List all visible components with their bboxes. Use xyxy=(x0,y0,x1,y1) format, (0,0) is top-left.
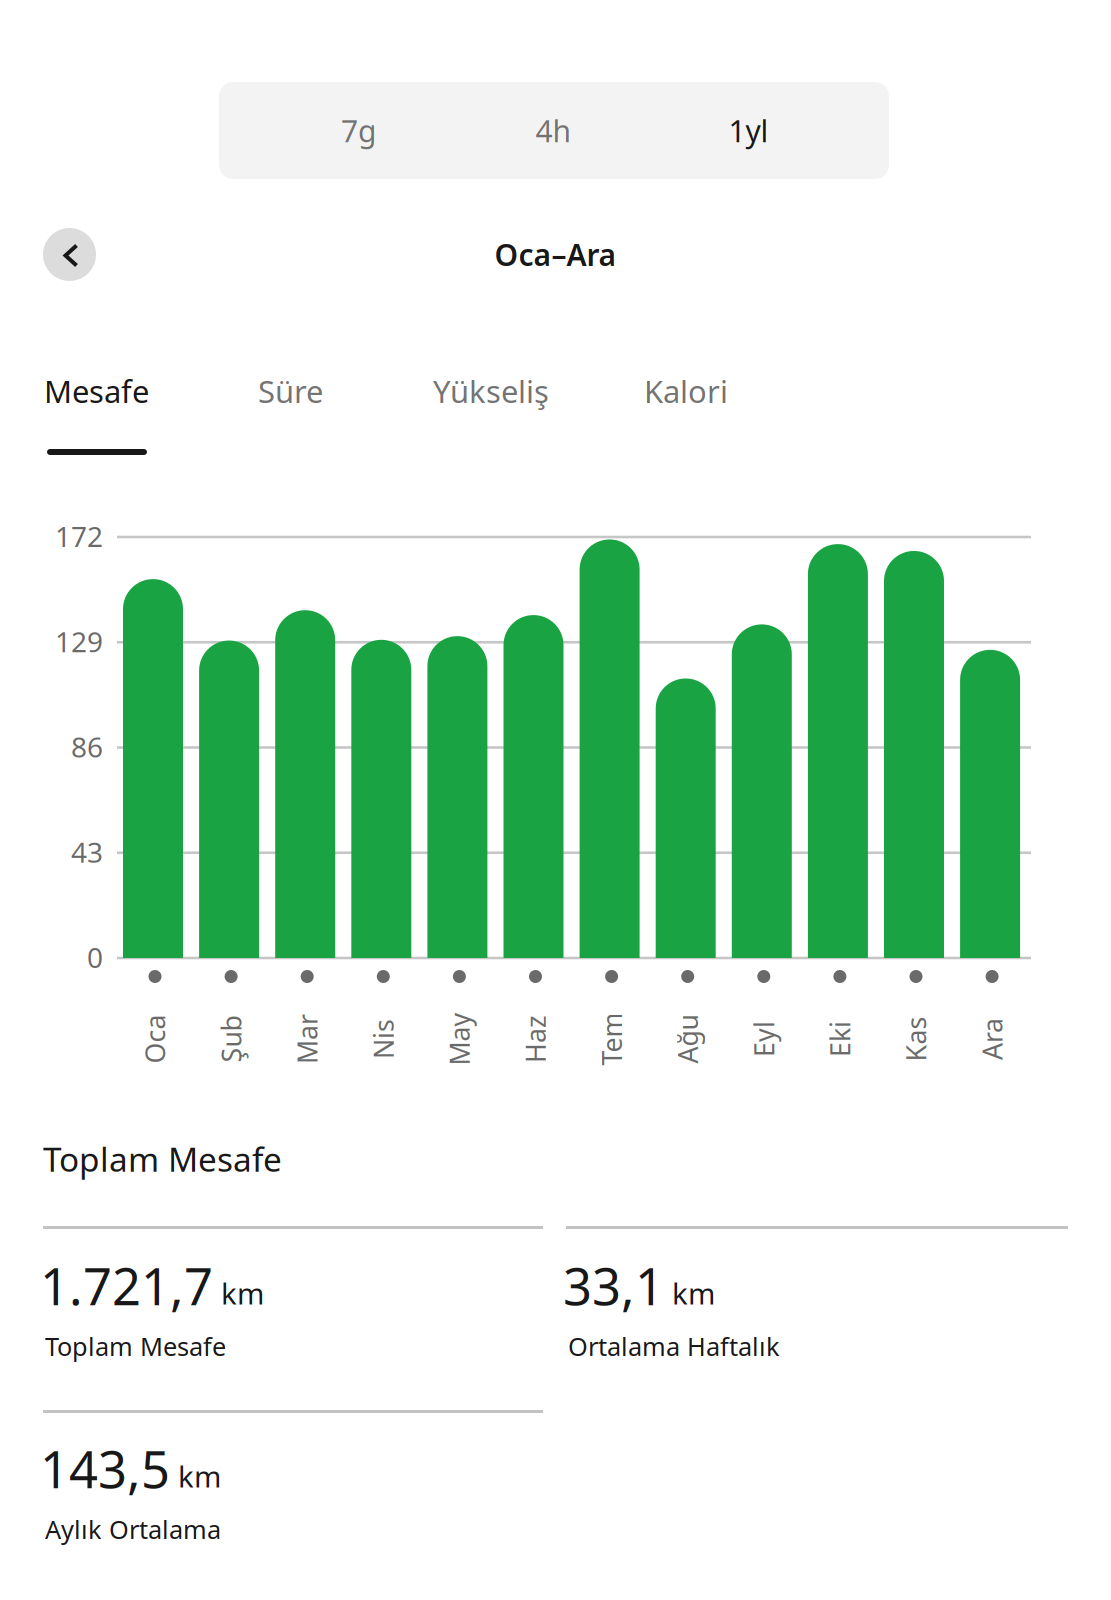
staticText: Yükseliş xyxy=(433,370,549,412)
button[interactable]: 1yl xyxy=(651,82,846,179)
staticText: Şub xyxy=(208,1021,255,1057)
staticText: 43 xyxy=(71,833,103,871)
staticText: Tem xyxy=(585,1021,638,1057)
button[interactable]: 7g xyxy=(261,82,456,179)
staticText: 143,5 xyxy=(40,1434,170,1503)
staticText: Aylık Ortalama xyxy=(45,1512,221,1546)
staticText: 172 xyxy=(55,517,103,555)
staticText: 0 xyxy=(87,938,103,976)
button[interactable]: 4h xyxy=(456,82,651,179)
staticText: Ağu xyxy=(663,1021,712,1057)
staticText: Haz xyxy=(511,1021,559,1057)
button[interactable]: Süre xyxy=(258,370,433,452)
staticText: Süre xyxy=(258,370,323,412)
button[interactable]: Kalori xyxy=(644,370,824,452)
staticText: Ara xyxy=(971,1021,1013,1057)
button[interactable]: Yükseliş xyxy=(433,370,644,452)
staticText: Nis xyxy=(363,1021,403,1057)
staticText: 33,1 xyxy=(563,1251,664,1320)
staticText: 7g xyxy=(341,110,376,151)
staticText: 86 xyxy=(71,727,103,766)
staticText: Kas xyxy=(893,1021,938,1057)
staticText: Kalori xyxy=(644,370,728,412)
staticText: Toplam Mesafe xyxy=(45,1329,226,1363)
staticText: km xyxy=(178,1456,221,1496)
staticText: 4h xyxy=(535,110,571,151)
staticText: Mar xyxy=(282,1021,332,1057)
staticText: 1yl xyxy=(728,110,768,151)
staticText: Eki xyxy=(822,1021,858,1057)
staticText: Oca xyxy=(130,1021,179,1057)
staticText: May xyxy=(433,1021,486,1057)
staticText: Toplam Mesafe xyxy=(43,1136,282,1181)
staticText: 1.721,7 xyxy=(40,1251,213,1320)
staticText: Eyl xyxy=(746,1021,782,1057)
staticText: Mesafe xyxy=(44,370,149,412)
button[interactable]: Mesafe xyxy=(44,370,258,452)
staticText: Oca–Ara xyxy=(494,234,616,275)
staticText: km xyxy=(672,1273,715,1313)
staticText: km xyxy=(221,1273,264,1313)
staticText: Ortalama Haftalık xyxy=(568,1329,780,1363)
button[interactable]: Back xyxy=(43,228,96,281)
staticText: 129 xyxy=(55,622,103,660)
